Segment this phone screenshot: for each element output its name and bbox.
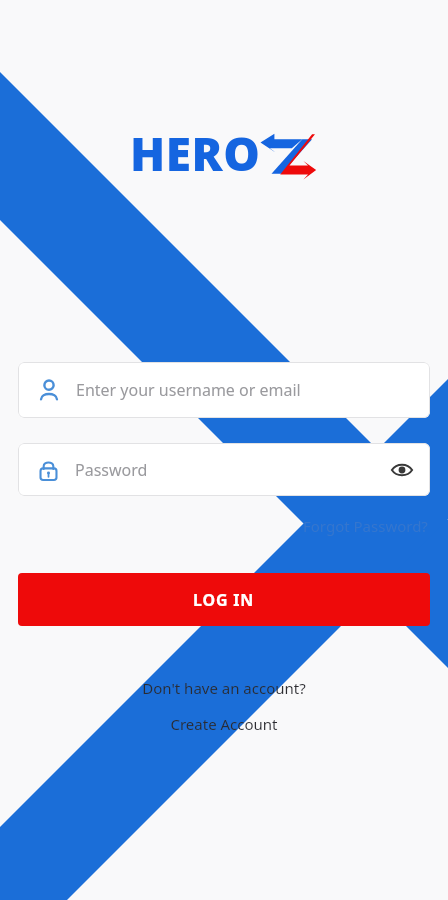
- staticText: Password: [75, 459, 148, 481]
- staticText: Don't have an account?: [142, 678, 306, 698]
- staticText: LOG IN: [193, 589, 255, 611]
- staticText: Enter your username or email: [76, 379, 301, 401]
- button[interactable]: Create Account: [164, 712, 284, 736]
- button[interactable]: LOG IN: [18, 573, 430, 626]
- button[interactable]: Show password: [382, 450, 422, 490]
- staticText: Forgot Password?: [303, 516, 428, 536]
- staticText: HERO: [130, 122, 261, 184]
- button[interactable]: Forgot Password?: [301, 514, 430, 538]
- button[interactable]: Enter your username or email: [18, 362, 430, 418]
- staticText: Create Account: [170, 714, 278, 734]
- button[interactable]: Password: [18, 443, 430, 496]
